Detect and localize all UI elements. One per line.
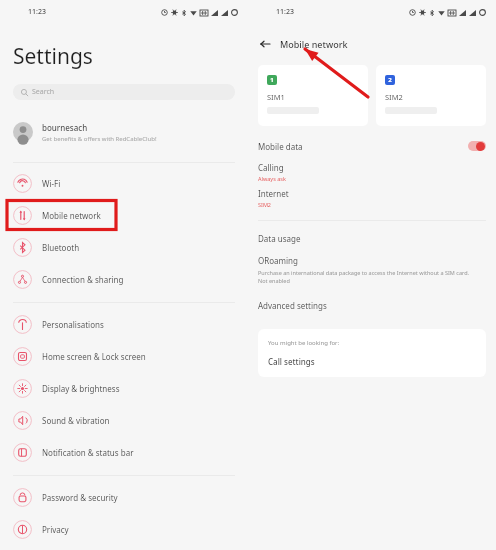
button[interactable]: Mobile data xyxy=(248,135,496,157)
staticText: Mobile network xyxy=(42,210,101,221)
staticText: Notification & status bar xyxy=(42,447,134,458)
staticText: SIM2 xyxy=(385,92,403,102)
staticText: Settings xyxy=(13,42,93,71)
staticText: Bluetooth xyxy=(42,242,80,253)
staticText: Personalisations xyxy=(42,319,104,330)
staticText: Home screen & Lock screen xyxy=(42,351,146,362)
button[interactable]: Password & security xyxy=(0,481,248,513)
button[interactable]: Back xyxy=(248,34,496,54)
button[interactable]: Data usage xyxy=(248,230,496,246)
staticText: ORoaming xyxy=(258,255,298,266)
staticText: Get benefits & offers with RedCableClub! xyxy=(42,135,157,143)
staticText: Internet xyxy=(258,188,289,199)
staticText: Sound & vibration xyxy=(42,415,110,426)
staticText: Mobile data xyxy=(258,141,303,152)
staticText: 2 xyxy=(388,76,392,84)
staticText: Wi-Fi xyxy=(42,178,61,189)
staticText: Not enabled xyxy=(258,277,290,284)
button[interactable]: Privacy xyxy=(0,513,248,545)
button[interactable]: Home screen & Lock screen xyxy=(0,340,248,372)
other: Back xyxy=(258,37,272,51)
staticText: 11:23 xyxy=(276,7,294,17)
button[interactable]: Notification & status bar xyxy=(0,436,248,468)
staticText: SIM1 xyxy=(267,92,285,102)
staticText: Connection & sharing xyxy=(42,274,124,285)
staticText: You might be looking for: xyxy=(268,339,340,347)
button[interactable]: Sound & vibration xyxy=(0,404,248,436)
staticText: Advanced settings xyxy=(258,300,327,311)
button[interactable]: Display & brightness xyxy=(0,372,248,404)
staticText: bournesach xyxy=(42,122,88,133)
staticText: 11:23 xyxy=(28,7,46,17)
staticText: Purchase an international data package t… xyxy=(258,269,470,276)
button[interactable]: 2 xyxy=(376,65,486,126)
button[interactable]: Search xyxy=(13,84,235,100)
button[interactable]: Personalisations xyxy=(0,308,248,340)
staticText: Data usage xyxy=(258,233,301,244)
button[interactable]: Bluetooth xyxy=(0,231,248,263)
staticText: Always ask xyxy=(258,175,286,182)
button[interactable]: Internet xyxy=(248,188,496,208)
button[interactable]: Calling xyxy=(248,162,496,182)
staticText: Display & brightness xyxy=(42,383,120,394)
staticText: Search xyxy=(32,87,55,97)
button[interactable]: Wi-Fi xyxy=(0,167,248,199)
staticText: Password & security xyxy=(42,492,118,503)
button[interactable]: You might be looking for: xyxy=(258,329,486,377)
button[interactable]: Advanced settings xyxy=(248,297,496,313)
button[interactable] xyxy=(468,141,486,151)
button[interactable]: bournesach xyxy=(0,116,248,148)
staticText: Call settings xyxy=(268,356,315,367)
button[interactable]: 1 xyxy=(258,65,368,126)
staticText: 1 xyxy=(270,76,274,84)
staticText: Calling xyxy=(258,162,284,173)
staticText: Privacy xyxy=(42,524,69,535)
button[interactable]: Mobile network xyxy=(0,199,248,231)
button[interactable]: ORoaming xyxy=(248,255,496,284)
staticText: SIM2 xyxy=(258,201,272,208)
button[interactable]: Connection & sharing xyxy=(0,263,248,295)
staticText: Mobile network xyxy=(280,38,348,50)
